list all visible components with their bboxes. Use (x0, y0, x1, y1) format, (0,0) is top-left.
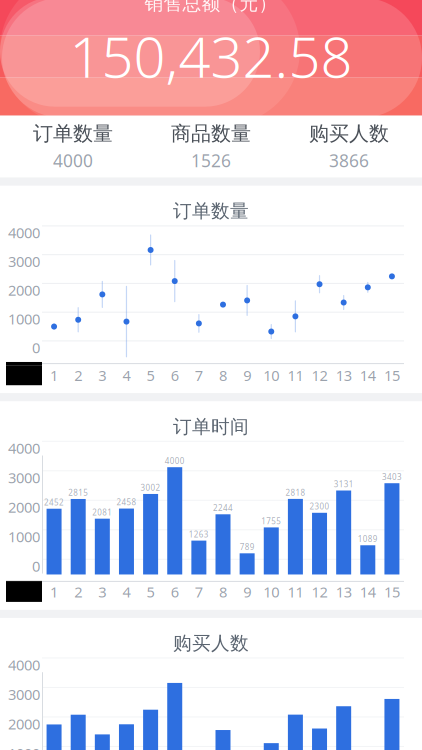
staticText: 5 (147, 365, 155, 385)
staticText: 2081 (92, 507, 112, 518)
staticText: 2 (74, 582, 82, 602)
staticText: 12 (311, 582, 327, 602)
staticText: 13 (336, 582, 352, 602)
staticText: 3000 (8, 468, 40, 487)
staticText: 10 (263, 582, 279, 602)
staticText: 2000 (8, 280, 40, 300)
staticText: 3131 (334, 479, 354, 489)
staticText: 订单数量 (173, 200, 249, 223)
staticText: 11 (287, 365, 303, 385)
staticText: 12 (311, 365, 327, 385)
staticText: 1 (50, 582, 58, 602)
staticText: 2815 (68, 487, 88, 498)
staticText: 1000 (8, 744, 40, 750)
staticText: 4 (122, 582, 130, 602)
staticText: 1526 (191, 149, 231, 172)
staticText: 2818 (285, 487, 305, 498)
staticText: 购买人数 (309, 121, 389, 146)
staticText: 4000 (8, 223, 40, 242)
staticText: 7 (195, 582, 203, 602)
staticText: 1000 (8, 527, 40, 546)
staticText: 1000 (8, 309, 40, 329)
staticText: 0 (32, 556, 40, 576)
staticText: 4000 (8, 655, 40, 675)
staticText: 2000 (8, 714, 40, 734)
staticText: 13 (336, 365, 352, 385)
staticText: 150,432.58 (69, 19, 352, 93)
staticText: 3866 (329, 149, 369, 172)
staticText: 2300 (309, 501, 329, 512)
staticText: 8 (219, 365, 227, 385)
staticText: 2 (74, 365, 82, 385)
staticText: 3 (98, 582, 106, 602)
staticText: 3002 (141, 482, 161, 493)
staticText: 购买人数 (173, 632, 249, 655)
staticText: 3 (98, 365, 106, 385)
staticText: 7 (195, 365, 203, 385)
staticText: 订单时间 (173, 415, 249, 438)
staticText: 2244 (213, 503, 233, 513)
staticText: 4000 (8, 438, 40, 458)
staticText: 1263 (189, 529, 209, 540)
staticText: 6 (171, 365, 179, 385)
staticText: 2000 (8, 497, 40, 517)
staticText: 15 (384, 365, 400, 385)
staticText: 1755 (261, 516, 281, 526)
staticText: 9 (243, 365, 251, 385)
staticText: 1 (50, 365, 58, 385)
staticText: 1089 (358, 534, 378, 544)
staticText: 789 (240, 542, 255, 552)
staticText: 5 (147, 582, 155, 602)
staticText: 4000 (165, 456, 185, 466)
staticText: 4000 (53, 149, 93, 172)
staticText: 10 (263, 365, 279, 385)
staticText: 订单数量 (33, 121, 113, 146)
staticText: 3403 (382, 472, 402, 482)
staticText: 2452 (44, 497, 64, 508)
staticText: 2458 (116, 497, 136, 507)
staticText: 0 (32, 338, 40, 357)
staticText: 9 (243, 582, 251, 602)
staticText: 8 (219, 582, 227, 602)
staticText: 6 (171, 582, 179, 602)
staticText: 11 (287, 582, 303, 602)
staticText: 商品数量 (171, 121, 251, 146)
staticText: 3000 (8, 252, 40, 271)
staticText: 4 (122, 365, 130, 385)
staticText: 14 (360, 582, 376, 602)
staticText: 销售总额（元） (144, 0, 277, 15)
staticText: 15 (384, 582, 400, 602)
staticText: 14 (360, 365, 376, 385)
staticText: 3000 (8, 685, 40, 704)
